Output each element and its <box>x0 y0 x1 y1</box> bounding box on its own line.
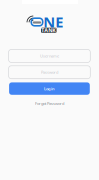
staticText: NE <box>43 12 63 32</box>
staticText: Username <box>40 53 59 59</box>
staticText: Login <box>44 86 55 91</box>
button[interactable]: Forgot Password <box>35 101 64 106</box>
staticText: Forgot Password <box>35 101 64 106</box>
button[interactable]: Login <box>9 82 90 95</box>
staticText: Password <box>41 70 58 75</box>
staticText: TANK <box>41 27 56 34</box>
